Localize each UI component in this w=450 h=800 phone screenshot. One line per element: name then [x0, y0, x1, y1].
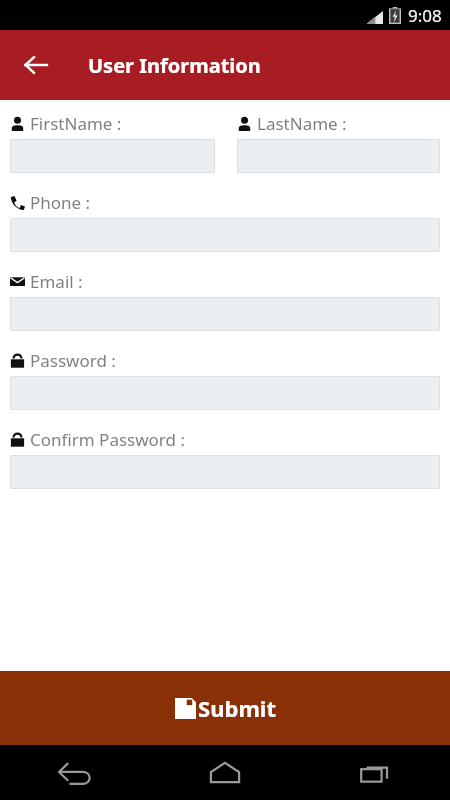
button[interactable]: Home	[150, 745, 300, 800]
button[interactable]	[10, 455, 440, 489]
staticText: Submit	[198, 693, 276, 723]
button[interactable]	[10, 297, 440, 331]
staticText: FirstName :	[30, 112, 122, 135]
button[interactable]	[10, 376, 440, 410]
button[interactable]	[237, 139, 440, 173]
staticText: 9:08	[408, 4, 442, 27]
button[interactable]: Back	[10, 39, 62, 91]
staticText: Confirm Password :	[30, 428, 185, 451]
button[interactable]	[10, 218, 440, 252]
staticText: Email :	[30, 270, 83, 293]
button[interactable]	[10, 139, 215, 173]
staticText: Password :	[30, 349, 116, 372]
staticText: LastName :	[257, 112, 347, 135]
button[interactable]: Submit	[0, 671, 450, 745]
button[interactable]: Recent apps	[300, 745, 450, 800]
staticText: User Information	[88, 52, 261, 79]
staticText: Phone :	[30, 191, 91, 214]
button[interactable]: Back	[0, 745, 150, 800]
